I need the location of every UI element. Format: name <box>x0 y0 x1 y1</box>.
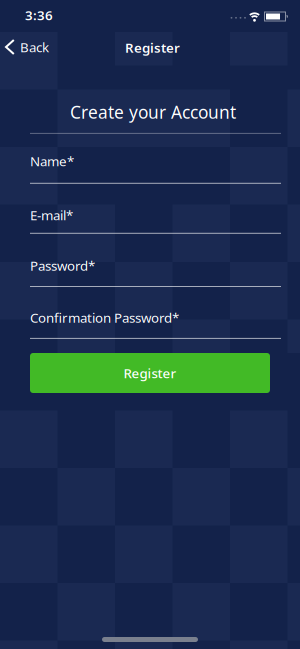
staticText: Back <box>20 38 49 56</box>
staticText: E-mail* <box>30 206 73 224</box>
staticText: 3:36 <box>25 6 53 24</box>
staticText: Register <box>125 39 180 56</box>
staticText: Confirmation Password* <box>30 309 179 326</box>
button[interactable]: Name* <box>30 155 281 199</box>
button[interactable]: Register <box>30 353 270 393</box>
staticText: Register <box>123 364 176 382</box>
button[interactable]: E-mail* <box>30 205 281 249</box>
staticText: Name* <box>30 152 74 170</box>
button[interactable]: Confirmation Password* <box>30 310 281 354</box>
button[interactable]: Password* <box>30 258 281 302</box>
staticText: Password* <box>30 257 95 274</box>
button[interactable]: Back <box>0 31 64 62</box>
staticText: Create your Account <box>70 100 236 123</box>
